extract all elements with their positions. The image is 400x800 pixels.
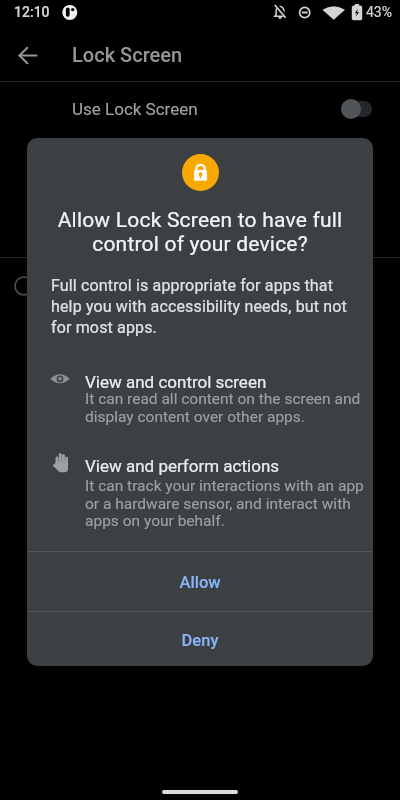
button[interactable]: Allow: [27, 552, 373, 611]
staticText: Use Lock Screen: [72, 99, 198, 119]
staticText: Allow: [27, 573, 373, 592]
button[interactable]: Use Lock Screen: [0, 86, 400, 132]
staticText: It can track your interactions with an a…: [85, 477, 364, 529]
button[interactable]: [6, 42, 50, 70]
button[interactable]: Deny: [27, 612, 373, 666]
staticText: Allow Lock Screen to have full control o…: [27, 208, 373, 256]
staticText: Full control is appropriate for apps tha…: [51, 276, 347, 337]
staticText: 43%: [366, 4, 392, 20]
staticText: View and control screen: [85, 372, 267, 392]
staticText: Deny: [27, 631, 373, 650]
staticText: It can read all content on the screen an…: [85, 390, 361, 426]
staticText: 12:10: [14, 4, 50, 20]
staticText: View and perform actions: [85, 456, 280, 476]
staticText: Lock Screen: [72, 43, 183, 66]
